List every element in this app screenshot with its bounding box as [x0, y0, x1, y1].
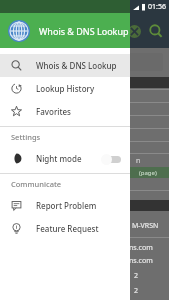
other: Search — [149, 24, 163, 38]
staticText: 01:56 — [148, 2, 166, 12]
staticText: Feature Request — [36, 223, 99, 234]
other: Report Problem — [11, 200, 22, 211]
staticText: Lookup History — [36, 83, 95, 94]
staticText: ns.com — [129, 243, 153, 253]
staticText: 2 — [134, 271, 139, 281]
staticText: (page) — [139, 169, 157, 177]
button[interactable]: Feature Request — [0, 217, 130, 240]
other: Favorites — [11, 106, 22, 117]
staticText: M-VRSN — [132, 221, 159, 231]
staticText: Favorites — [36, 106, 71, 117]
other: Feature Request — [11, 223, 22, 234]
other: Lookup History — [11, 83, 22, 94]
button[interactable]: Report Problem — [0, 194, 130, 217]
staticText: Report Problem — [36, 200, 97, 211]
other: Clear — [128, 25, 141, 38]
button[interactable]: Whois & DNS Lookup — [0, 54, 130, 77]
staticText: Whois & DNS Lookup — [36, 60, 117, 71]
staticText: n — [136, 156, 141, 166]
other: Whois & DNS Lookup — [11, 60, 22, 71]
button[interactable]: Lookup History — [0, 77, 130, 100]
staticText: 2 — [134, 286, 139, 296]
staticText: ns.com — [129, 256, 153, 266]
other: Night mode — [11, 153, 22, 164]
staticText: Communicate — [11, 179, 62, 189]
button[interactable]: Night mode — [0, 147, 130, 170]
staticText: Settings — [11, 132, 41, 142]
button[interactable]: Favorites — [0, 100, 130, 123]
staticText: Whois & DNS Lookup — [39, 25, 129, 37]
staticText: Night mode — [36, 153, 82, 164]
